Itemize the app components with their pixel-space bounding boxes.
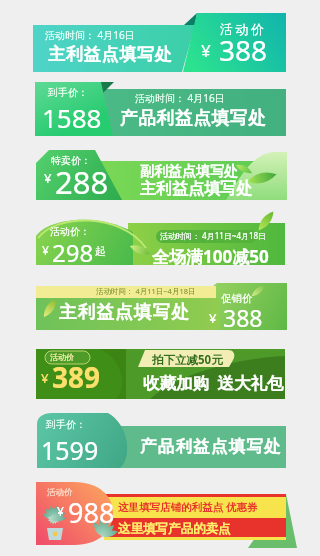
staticText: 这里填写产品的卖点 [118, 521, 231, 537]
staticText: 388 [219, 31, 268, 69]
staticText: 特卖价： [51, 154, 91, 167]
staticText: 副利益点填写处 [140, 163, 238, 181]
staticText: ¥ [209, 309, 217, 327]
staticText: 298 [52, 236, 94, 269]
staticText: 全场满100减50 [152, 245, 269, 268]
staticText: 活动价 [50, 352, 74, 362]
staticText: 活动价 [220, 21, 267, 37]
staticText: 拍下立减50元 [152, 352, 223, 368]
staticText: 1588 [42, 100, 102, 135]
button[interactable]: 到手价： [35, 82, 286, 136]
staticText: 活动价 [47, 487, 73, 498]
button[interactable]: 到手价： [37, 413, 286, 468]
staticText: ¥ [41, 369, 49, 387]
staticText: 起 [95, 244, 106, 258]
staticText: 到手价： [48, 86, 88, 99]
staticText: 产品利益点填写处 [140, 436, 282, 457]
staticText: 1599 [41, 433, 99, 467]
staticText: 主利益点填写处 [48, 44, 173, 65]
staticText: 这里填写店铺的利益点 优惠券 [118, 500, 258, 514]
staticText: 活动时间： 4月11日~4月18日 [96, 286, 196, 296]
staticText: ¥ [42, 242, 49, 258]
staticText: 主利益点填写处 [59, 301, 190, 323]
button[interactable]: 活动价： [36, 215, 285, 265]
staticText: 288 [55, 161, 109, 203]
staticText: 收藏加购 送大礼包 [143, 371, 284, 394]
staticText: 促销价 [221, 292, 253, 305]
button[interactable]: 活动时间： 4月16日 [33, 13, 286, 72]
staticText: 988 [68, 494, 115, 531]
staticText: 活动时间： 4月16日 [135, 91, 225, 105]
staticText: 活动价： [50, 225, 90, 238]
staticText: ¥ [57, 503, 64, 519]
staticText: 389 [52, 358, 101, 396]
staticText: 活动时间： 4月16日 [45, 28, 135, 42]
staticText: 388 [223, 302, 263, 333]
staticText: 到手价： [46, 418, 86, 431]
button[interactable]: 特卖价： [36, 150, 287, 200]
staticText: 活动时间： 4月11日~4月18日 [160, 230, 267, 241]
button[interactable]: 活动价 [36, 349, 285, 399]
button[interactable]: 活动价 [36, 481, 304, 552]
staticText: 产品利益点填写处 [120, 107, 267, 129]
staticText: ¥ [44, 169, 52, 187]
staticText: ¥ [201, 39, 211, 62]
staticText: 主利益点填写处 [140, 179, 252, 199]
button[interactable]: 活动时间： 4月11日~4月18日 [36, 285, 287, 330]
